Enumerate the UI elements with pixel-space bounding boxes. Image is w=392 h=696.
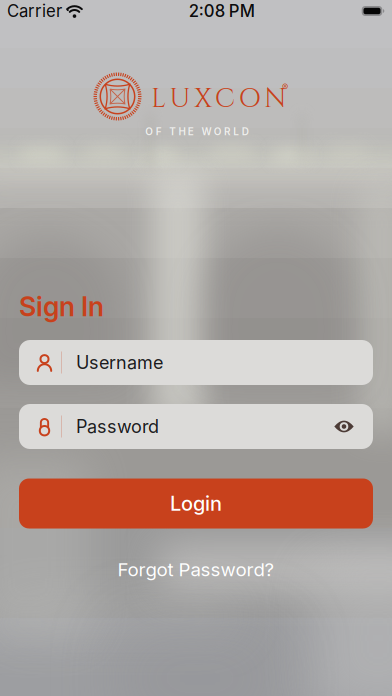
staticText: 2:08 PM (189, 1, 255, 21)
button[interactable]: Login (19, 478, 373, 528)
staticText: Carrier (7, 1, 62, 21)
staticText: LUXCON (151, 81, 286, 117)
staticText: OF THE WORLD (145, 125, 249, 138)
staticText: Sign In (19, 290, 104, 323)
button[interactable]: Show password (331, 413, 357, 439)
staticText: Password (76, 416, 159, 437)
staticText: ® (282, 81, 288, 93)
staticText: Login (170, 491, 222, 516)
staticText: Forgot Password? (117, 558, 274, 581)
staticText: Username (76, 352, 163, 373)
button[interactable]: Forgot Password? (86, 553, 306, 585)
